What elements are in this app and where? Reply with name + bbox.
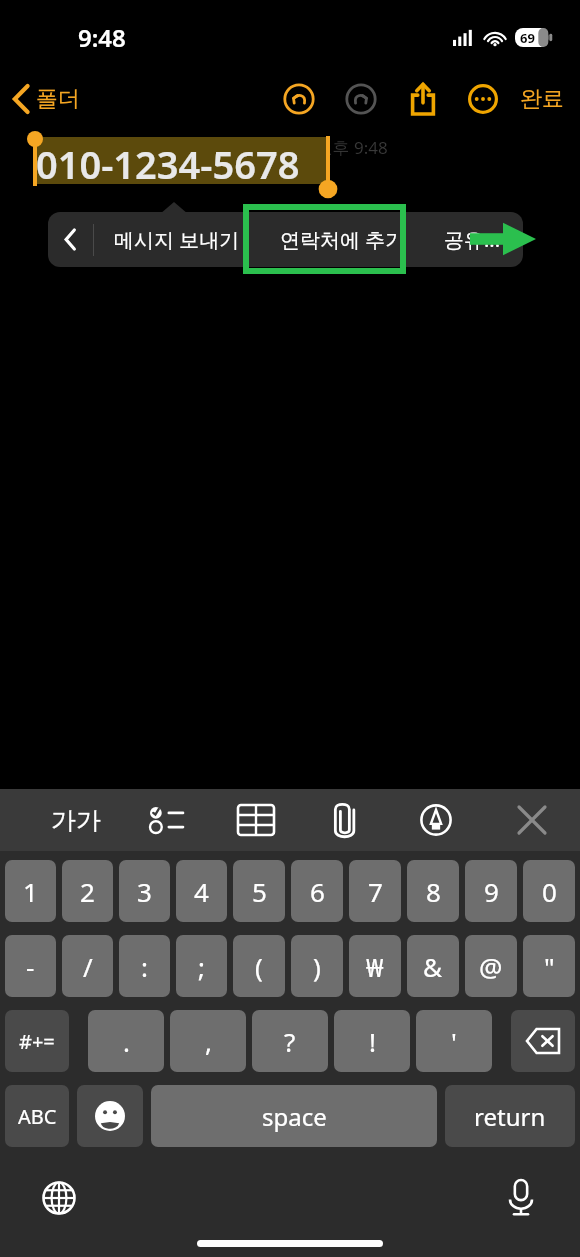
staticText: ' bbox=[451, 1024, 457, 1059]
button[interactable]: 0 bbox=[523, 860, 575, 922]
button[interactable]: Delete bbox=[511, 1010, 575, 1072]
button[interactable]: Attach bbox=[318, 792, 374, 848]
staticText: 9 bbox=[484, 874, 499, 909]
staticText: 완료 bbox=[520, 85, 564, 113]
staticText: 폴더 bbox=[36, 85, 80, 113]
staticText: ) bbox=[313, 949, 321, 984]
staticText: 0 bbox=[542, 874, 557, 909]
staticText: - bbox=[26, 949, 35, 984]
button[interactable]: ₩ bbox=[349, 935, 401, 997]
button[interactable]: " bbox=[523, 935, 575, 997]
button[interactable]: 3 bbox=[119, 860, 170, 922]
staticText: 연락처에 추가 bbox=[280, 226, 406, 253]
button[interactable]: ; bbox=[176, 935, 227, 997]
button[interactable]: Close keyboard bbox=[504, 792, 560, 848]
button[interactable]: 공유... bbox=[426, 212, 523, 267]
button[interactable]: 메시지 보내기 bbox=[94, 212, 260, 267]
staticText: 6 bbox=[310, 874, 325, 909]
button[interactable]: , bbox=[170, 1010, 246, 1072]
button[interactable]: 1 bbox=[5, 860, 56, 922]
staticText: ; bbox=[198, 949, 205, 984]
button[interactable]: Format bbox=[48, 792, 104, 848]
button[interactable]: 8 bbox=[407, 860, 459, 922]
button[interactable]: Redo bbox=[338, 76, 384, 122]
button[interactable]: : bbox=[119, 935, 170, 997]
staticText: 1 bbox=[23, 874, 38, 909]
staticText: 공유... bbox=[444, 226, 501, 253]
button[interactable]: Undo bbox=[276, 76, 322, 122]
staticText: 7 bbox=[368, 874, 383, 909]
staticText: ( bbox=[255, 949, 263, 984]
staticText: return bbox=[474, 1100, 546, 1133]
staticText: ! bbox=[369, 1024, 376, 1059]
button[interactable]: & bbox=[407, 935, 459, 997]
staticText: 010-1234-5678 bbox=[36, 138, 300, 190]
button[interactable]: 9 bbox=[465, 860, 517, 922]
staticText: ? bbox=[284, 1024, 296, 1059]
staticText: #+= bbox=[19, 1028, 55, 1055]
staticText: . bbox=[123, 1024, 130, 1059]
staticText: ₩ bbox=[366, 949, 384, 984]
button[interactable]: Checklist bbox=[138, 792, 194, 848]
staticText: / bbox=[83, 949, 93, 984]
staticText: 가가 bbox=[51, 805, 101, 836]
staticText: ABC bbox=[18, 1103, 57, 1130]
button[interactable]: 연락처에 추가 bbox=[260, 212, 426, 267]
button[interactable]: 6 bbox=[291, 860, 343, 922]
button[interactable]: #+= bbox=[5, 1010, 69, 1072]
button[interactable]: ( bbox=[233, 935, 285, 997]
button[interactable]: @ bbox=[465, 935, 517, 997]
button[interactable]: 완료 bbox=[516, 85, 568, 113]
button[interactable]: Share bbox=[400, 76, 446, 122]
staticText: : bbox=[141, 949, 148, 984]
button[interactable]: 2 bbox=[62, 860, 113, 922]
button[interactable]: Previous bbox=[48, 212, 93, 267]
staticText: 8 bbox=[426, 874, 441, 909]
button[interactable]: 폴더 bbox=[14, 85, 80, 113]
button[interactable]: ) bbox=[291, 935, 343, 997]
button[interactable]: Switch keyboard bbox=[36, 1175, 82, 1221]
button[interactable]: Emoji bbox=[77, 1085, 143, 1147]
button[interactable]: More bbox=[460, 76, 506, 122]
button[interactable]: space bbox=[151, 1085, 437, 1147]
staticText: 69 bbox=[520, 29, 535, 47]
staticText: & bbox=[423, 949, 443, 984]
button[interactable]: / bbox=[62, 935, 113, 997]
button[interactable]: . bbox=[88, 1010, 164, 1072]
button[interactable]: 4 bbox=[176, 860, 227, 922]
button[interactable]: ABC bbox=[5, 1085, 69, 1147]
button[interactable]: - bbox=[5, 935, 56, 997]
button[interactable]: Table bbox=[228, 792, 284, 848]
staticText: @ bbox=[479, 949, 503, 984]
staticText: , bbox=[205, 1024, 212, 1059]
button[interactable]: ' bbox=[416, 1010, 492, 1072]
button[interactable]: 5 bbox=[233, 860, 285, 922]
button[interactable]: Dictation bbox=[498, 1175, 544, 1221]
staticText: 2 bbox=[80, 874, 95, 909]
staticText: 4 bbox=[194, 874, 209, 909]
button[interactable]: ? bbox=[252, 1010, 328, 1072]
staticText: 메시지 보내기 bbox=[114, 226, 240, 253]
button[interactable]: Markup bbox=[408, 792, 464, 848]
button[interactable]: ! bbox=[334, 1010, 410, 1072]
staticText: 2025년 2월 5일 오후 9:48 bbox=[193, 136, 388, 159]
staticText: " bbox=[544, 949, 555, 984]
button[interactable]: 7 bbox=[349, 860, 401, 922]
staticText: 3 bbox=[137, 874, 152, 909]
staticText: 9:48 bbox=[78, 21, 126, 54]
staticText: 5 bbox=[252, 874, 267, 909]
staticText: space bbox=[262, 1100, 327, 1133]
button[interactable]: return bbox=[445, 1085, 575, 1147]
